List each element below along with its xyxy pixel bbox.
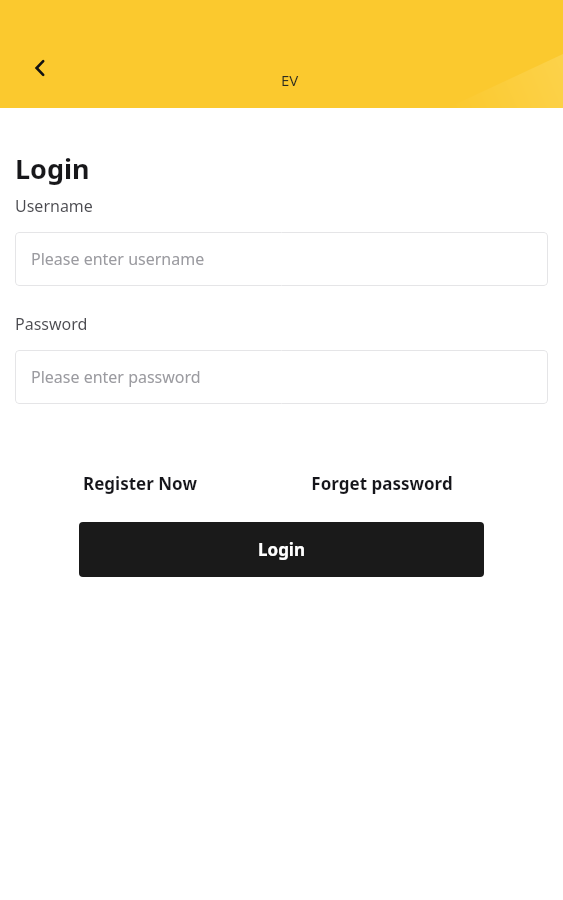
staticText: Password [15,313,88,335]
button[interactable]: Register Now [15,466,265,500]
button[interactable]: Login [79,522,484,577]
button[interactable]: Back [16,44,64,92]
staticText: Register Now [83,472,197,495]
button[interactable]: Please enter password [15,350,548,404]
button[interactable]: Please enter username [15,232,548,286]
staticText: Please enter password [31,366,201,388]
staticText: Login [258,538,306,561]
button[interactable]: Forget password [265,466,498,500]
staticText: Please enter username [31,248,205,270]
staticText: Forget password [311,472,453,495]
staticText: Username [15,195,93,217]
staticText: EV [281,70,299,90]
staticText: Login [15,150,90,187]
